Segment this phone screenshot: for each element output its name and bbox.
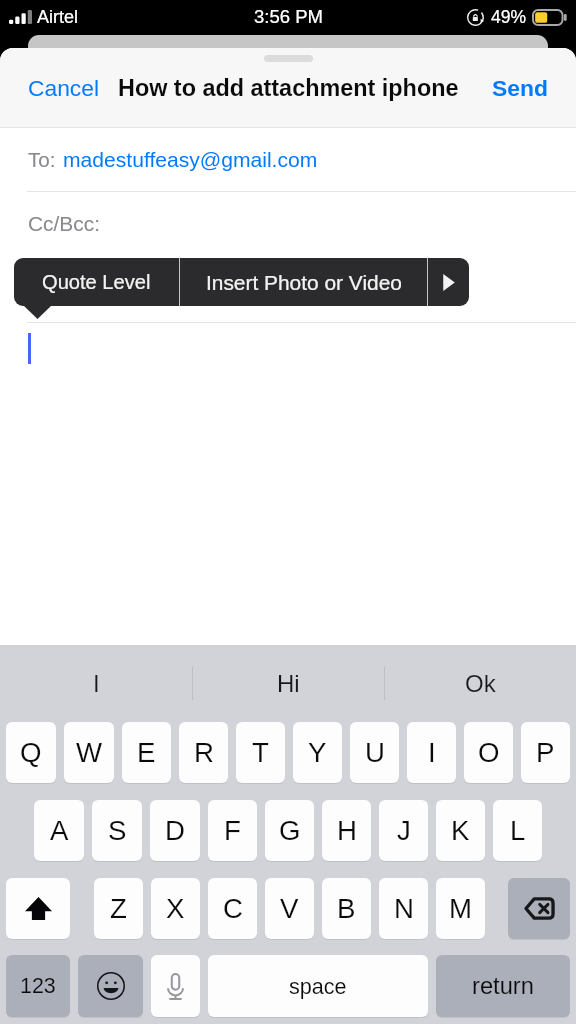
staticText: B (337, 893, 356, 924)
button[interactable]: W (64, 722, 114, 783)
staticText: 3:56 PM (254, 6, 323, 27)
button[interactable]: Send (484, 69, 556, 107)
button[interactable]: T (236, 722, 285, 783)
staticText: E (137, 737, 156, 768)
staticText: space (289, 974, 347, 998)
button[interactable]: Hi (193, 651, 384, 715)
button[interactable]: P (521, 722, 570, 783)
staticText: L (510, 815, 526, 846)
button[interactable]: Dictation (151, 955, 200, 1017)
button[interactable]: L (493, 800, 542, 861)
staticText: M (449, 893, 472, 924)
button[interactable]: Quote Level (14, 258, 179, 306)
button[interactable]: X (151, 878, 200, 939)
staticText: W (76, 737, 103, 768)
button[interactable]: V (265, 878, 314, 939)
button[interactable]: H (322, 800, 371, 861)
staticText: O (478, 737, 500, 768)
button[interactable]: K (436, 800, 485, 861)
button[interactable]: Insert Photo or Video (180, 258, 427, 306)
button[interactable]: E (122, 722, 171, 783)
button[interactable]: O (464, 722, 513, 783)
staticText: R (194, 737, 214, 768)
staticText: H (337, 815, 357, 846)
button[interactable]: I (407, 722, 456, 783)
staticText: V (280, 893, 299, 924)
staticText: Hi (277, 670, 300, 697)
staticText: madestuffeasy@gmail.com (63, 148, 318, 172)
staticText: Y (308, 737, 327, 768)
staticText: G (279, 815, 301, 846)
staticText: X (166, 893, 185, 924)
button[interactable]: Emoji keyboard (78, 955, 143, 1017)
staticText: T (252, 737, 269, 768)
button[interactable]: I (0, 651, 192, 715)
button[interactable]: Cc/Bcc: (0, 192, 576, 255)
button[interactable]: 123 (6, 955, 70, 1017)
button[interactable]: B (322, 878, 371, 939)
button[interactable]: N (379, 878, 428, 939)
button[interactable]: To: (0, 128, 576, 191)
button[interactable]: Ok (385, 651, 576, 715)
button[interactable]: D (150, 800, 200, 861)
staticText: 49% (491, 7, 527, 27)
button[interactable]: C (208, 878, 257, 939)
button[interactable]: R (179, 722, 228, 783)
button[interactable]: Z (94, 878, 143, 939)
staticText: Cc/Bcc: (28, 212, 100, 235)
button[interactable]: Y (293, 722, 342, 783)
staticText: K (451, 815, 470, 846)
button[interactable]: U (350, 722, 399, 783)
staticText: J (397, 815, 411, 846)
button[interactable]: G (265, 800, 314, 861)
button[interactable]: M (436, 878, 485, 939)
button[interactable]: space (208, 955, 428, 1017)
staticText: N (394, 893, 414, 924)
staticText: U (365, 737, 385, 768)
staticText: Quote Level (42, 271, 151, 293)
staticText: Airtel (37, 7, 79, 27)
staticText: I (428, 737, 436, 768)
staticText: 123 (20, 974, 56, 998)
staticText: Ok (465, 670, 496, 697)
button[interactable]: Q (6, 722, 56, 783)
button[interactable]: F (208, 800, 257, 861)
staticText: F (224, 815, 241, 846)
button[interactable]: J (379, 800, 428, 861)
staticText: P (536, 737, 555, 768)
button[interactable]: Shift (6, 878, 70, 939)
staticText: How to add attachment iphone (118, 75, 459, 101)
button[interactable]: A (34, 800, 84, 861)
button[interactable]: Cancel (20, 69, 107, 106)
staticText: S (108, 815, 127, 846)
button[interactable]: More options (428, 258, 469, 306)
button[interactable]: Backspace (508, 878, 570, 939)
staticText: Q (20, 737, 42, 768)
staticText: A (50, 815, 69, 846)
staticText: Insert Photo or Video (206, 271, 402, 294)
staticText: D (165, 815, 185, 846)
staticText: I (93, 670, 100, 697)
staticText: C (223, 893, 243, 924)
button[interactable]: S (92, 800, 142, 861)
button[interactable]: return (436, 955, 570, 1017)
staticText: Send (492, 75, 548, 101)
staticText: Z (110, 893, 127, 924)
staticText: return (472, 973, 534, 999)
staticText: Cancel (28, 75, 99, 100)
staticText: To: (28, 148, 56, 171)
